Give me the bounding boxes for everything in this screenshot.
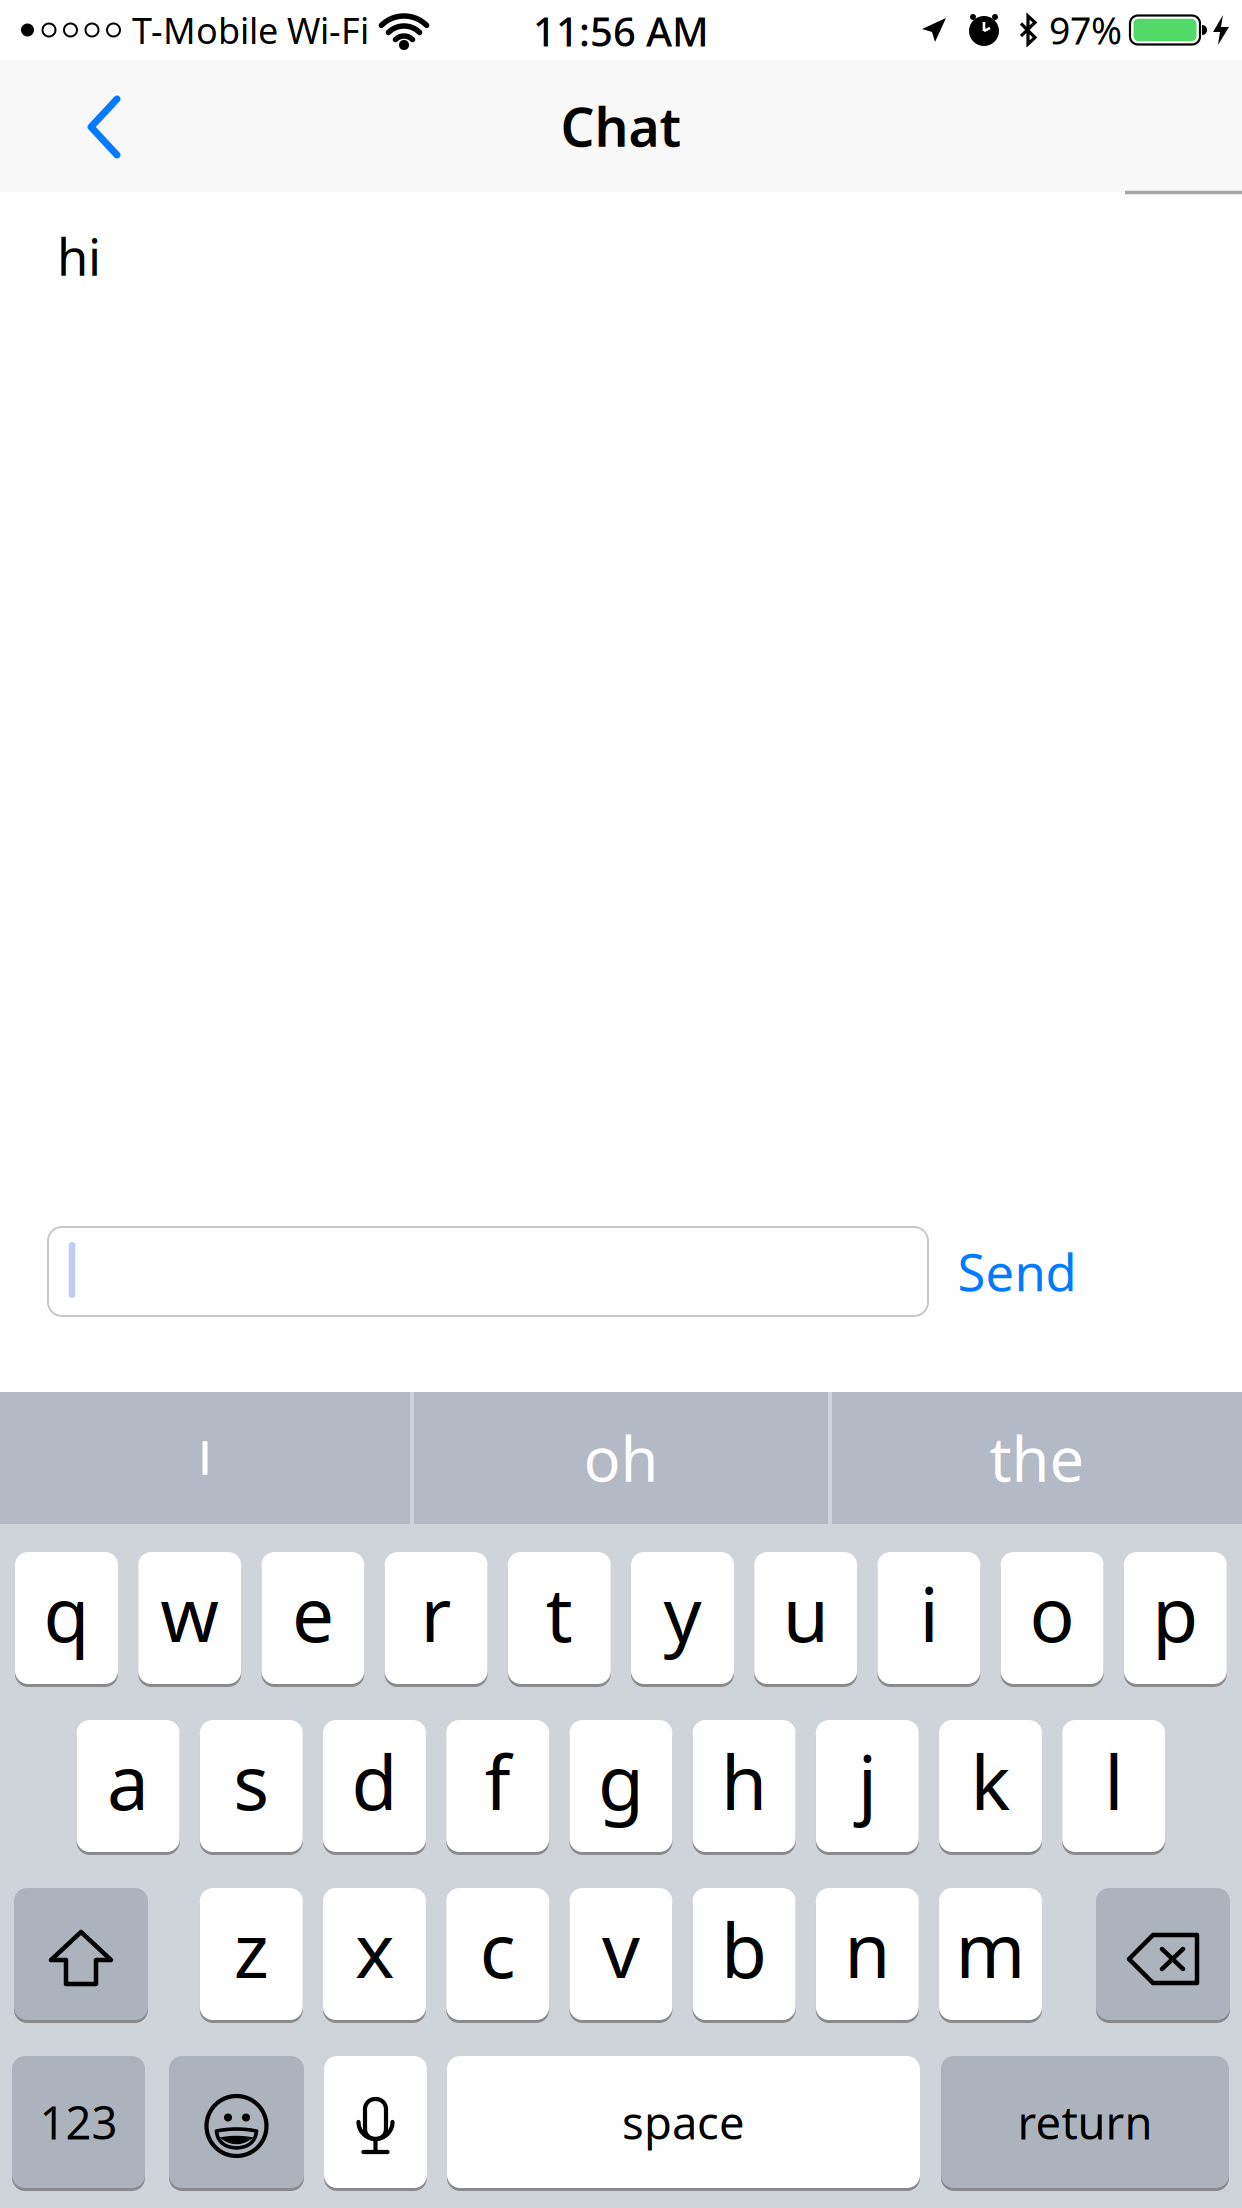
button[interactable]: Send (957, 1238, 1076, 1305)
staticText: f (485, 1731, 511, 1831)
button[interactable]: u (754, 1552, 857, 1684)
button[interactable] (324, 2056, 427, 2188)
button[interactable] (84, 92, 124, 162)
button[interactable]: j (816, 1720, 919, 1852)
button[interactable]: y (631, 1552, 734, 1684)
staticText: x (355, 1899, 394, 1999)
staticText: k (970, 1731, 1010, 1831)
staticText: p (1152, 1563, 1198, 1663)
button[interactable]: s (200, 1720, 303, 1852)
staticText: u (783, 1563, 829, 1663)
button[interactable]: a (77, 1720, 180, 1852)
button[interactable]: r (385, 1552, 488, 1684)
button[interactable]: i (877, 1552, 980, 1684)
button[interactable] (169, 2056, 304, 2188)
staticText: q (43, 1563, 89, 1663)
button[interactable]: d (323, 1720, 426, 1852)
button[interactable]: w (138, 1552, 241, 1684)
button[interactable]: 123 (12, 2056, 145, 2188)
button[interactable]: k (939, 1720, 1042, 1852)
staticText: b (721, 1899, 767, 1999)
staticText: g (598, 1731, 644, 1831)
button[interactable]: n (816, 1888, 919, 2020)
button[interactable]: h (693, 1720, 796, 1852)
button[interactable]: space (447, 2056, 920, 2188)
staticText: m (955, 1899, 1025, 1999)
staticText: c (480, 1899, 516, 1999)
button[interactable]: oh (416, 1392, 826, 1524)
staticText: v (602, 1899, 640, 1999)
button[interactable] (14, 1888, 148, 2020)
button[interactable]: return (941, 2056, 1229, 2188)
button[interactable]: o (1001, 1552, 1104, 1684)
staticText: hi (57, 222, 101, 290)
button[interactable]: q (15, 1552, 118, 1684)
staticText: T-Mobile Wi-Fi (132, 6, 369, 54)
button[interactable]: t (508, 1552, 611, 1684)
button[interactable]: c (446, 1888, 549, 2020)
staticText: t (546, 1563, 573, 1663)
staticText: n (844, 1899, 890, 1999)
button[interactable]: g (569, 1720, 672, 1852)
staticText: j (858, 1731, 877, 1831)
button[interactable]: e (261, 1552, 364, 1684)
staticText: a (107, 1731, 149, 1831)
staticText: space (622, 2092, 745, 2152)
button[interactable] (3, 1392, 407, 1524)
button[interactable]: x (323, 1888, 426, 2020)
staticText: 123 (39, 2092, 117, 2152)
button[interactable] (1096, 1888, 1230, 2020)
staticText: r (421, 1563, 452, 1663)
staticText: h (721, 1731, 767, 1831)
staticText: l (1104, 1731, 1123, 1831)
button[interactable] (48, 1227, 928, 1316)
button[interactable]: f (446, 1720, 549, 1852)
staticText: s (233, 1731, 269, 1831)
staticText: the (989, 1417, 1084, 1499)
button[interactable]: v (569, 1888, 672, 2020)
staticText: 11:56 AM (533, 4, 709, 57)
staticText: Chat (560, 91, 681, 161)
staticText: o (1030, 1563, 1075, 1663)
button[interactable]: b (693, 1888, 796, 2020)
staticText: return (1017, 2092, 1152, 2152)
button[interactable]: z (200, 1888, 303, 2020)
button[interactable]: m (939, 1888, 1042, 2020)
button[interactable]: the (835, 1392, 1239, 1524)
staticText: z (234, 1899, 269, 1999)
staticText: d (351, 1731, 397, 1831)
staticText: y (663, 1563, 701, 1663)
staticText: i (919, 1563, 938, 1663)
button[interactable]: l (1062, 1720, 1165, 1852)
staticText: 97% (1049, 5, 1122, 55)
staticText: oh (583, 1417, 658, 1499)
staticText: w (160, 1563, 219, 1663)
staticText: e (292, 1563, 334, 1663)
staticText: Send (957, 1238, 1076, 1305)
button[interactable]: p (1124, 1552, 1227, 1684)
